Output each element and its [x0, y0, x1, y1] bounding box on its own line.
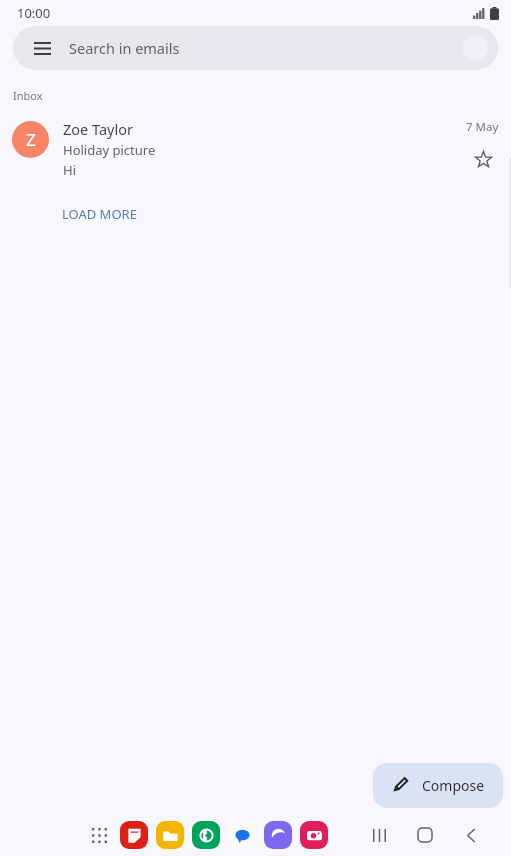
button[interactable]: Messages [228, 821, 256, 849]
button[interactable]: Notes [120, 821, 148, 849]
button[interactable]: Open navigation menu [13, 26, 498, 70]
button[interactable]: Apps [86, 822, 112, 848]
button[interactable]: Z [0, 115, 511, 183]
button[interactable]: Compose [373, 763, 503, 808]
button[interactable]: Back [451, 815, 491, 855]
staticText: 10:00 [17, 4, 51, 22]
button[interactable]: Account [462, 35, 488, 61]
button[interactable]: Star email [469, 145, 497, 173]
button[interactable]: Home [405, 815, 445, 855]
button[interactable]: Recent apps [359, 815, 399, 855]
button[interactable]: Internet [264, 821, 292, 849]
staticText: Zoe Taylor [63, 119, 133, 139]
button[interactable]: Camera [300, 821, 328, 849]
staticText: Hi [63, 161, 76, 179]
staticText: LOAD MORE [62, 205, 137, 223]
staticText: Inbox [13, 88, 43, 103]
staticText: Compose [422, 776, 485, 795]
staticText: Z [26, 128, 36, 151]
staticText: 7 May [466, 119, 499, 135]
staticText: Search in emails [69, 38, 180, 58]
button[interactable]: Phone [192, 821, 220, 849]
staticText: Holiday picture [63, 141, 156, 159]
button[interactable]: My Files [156, 821, 184, 849]
button[interactable]: Open navigation menu [27, 33, 57, 63]
button[interactable]: LOAD MORE [50, 199, 149, 229]
